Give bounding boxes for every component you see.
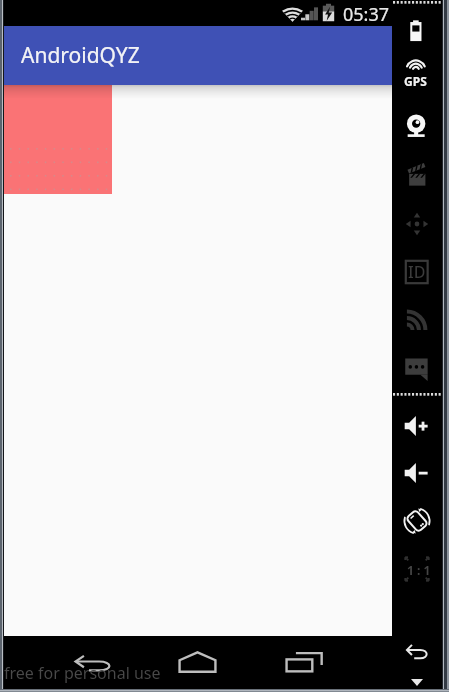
button[interactable]: Take screenshot bbox=[403, 113, 431, 141]
button[interactable]: More bbox=[411, 679, 423, 686]
button[interactable]: AndroidQYZ bbox=[4, 26, 392, 85]
button[interactable]: Location bbox=[403, 56, 431, 84]
staticText: 05:37 bbox=[343, 2, 390, 27]
staticText: AndroidQYZ bbox=[21, 41, 140, 70]
button[interactable]: Volume up bbox=[403, 412, 431, 440]
button[interactable]: Zoom to actual size bbox=[403, 555, 431, 583]
button[interactable]: Recents bbox=[285, 649, 324, 675]
button[interactable]: Record screen bbox=[403, 161, 431, 189]
button[interactable]: Device identity bbox=[403, 258, 431, 286]
button[interactable]: Directional pad bbox=[403, 210, 431, 238]
button[interactable]: Back bbox=[73, 648, 115, 674]
staticText: GPS bbox=[404, 73, 427, 89]
button[interactable]: Battery bbox=[403, 17, 431, 45]
button[interactable]: Back bbox=[403, 637, 431, 665]
button[interactable]: Home bbox=[178, 651, 217, 673]
button[interactable] bbox=[4, 85, 112, 194]
staticText: ID bbox=[408, 261, 426, 283]
button[interactable]: Messages bbox=[403, 354, 431, 382]
button[interactable]: Cellular bbox=[403, 306, 431, 334]
button[interactable]: Rotate bbox=[403, 507, 431, 535]
staticText: 1 : 1 bbox=[407, 562, 431, 578]
staticText: free for personal use bbox=[4, 662, 161, 684]
button[interactable]: Volume down bbox=[403, 459, 431, 487]
